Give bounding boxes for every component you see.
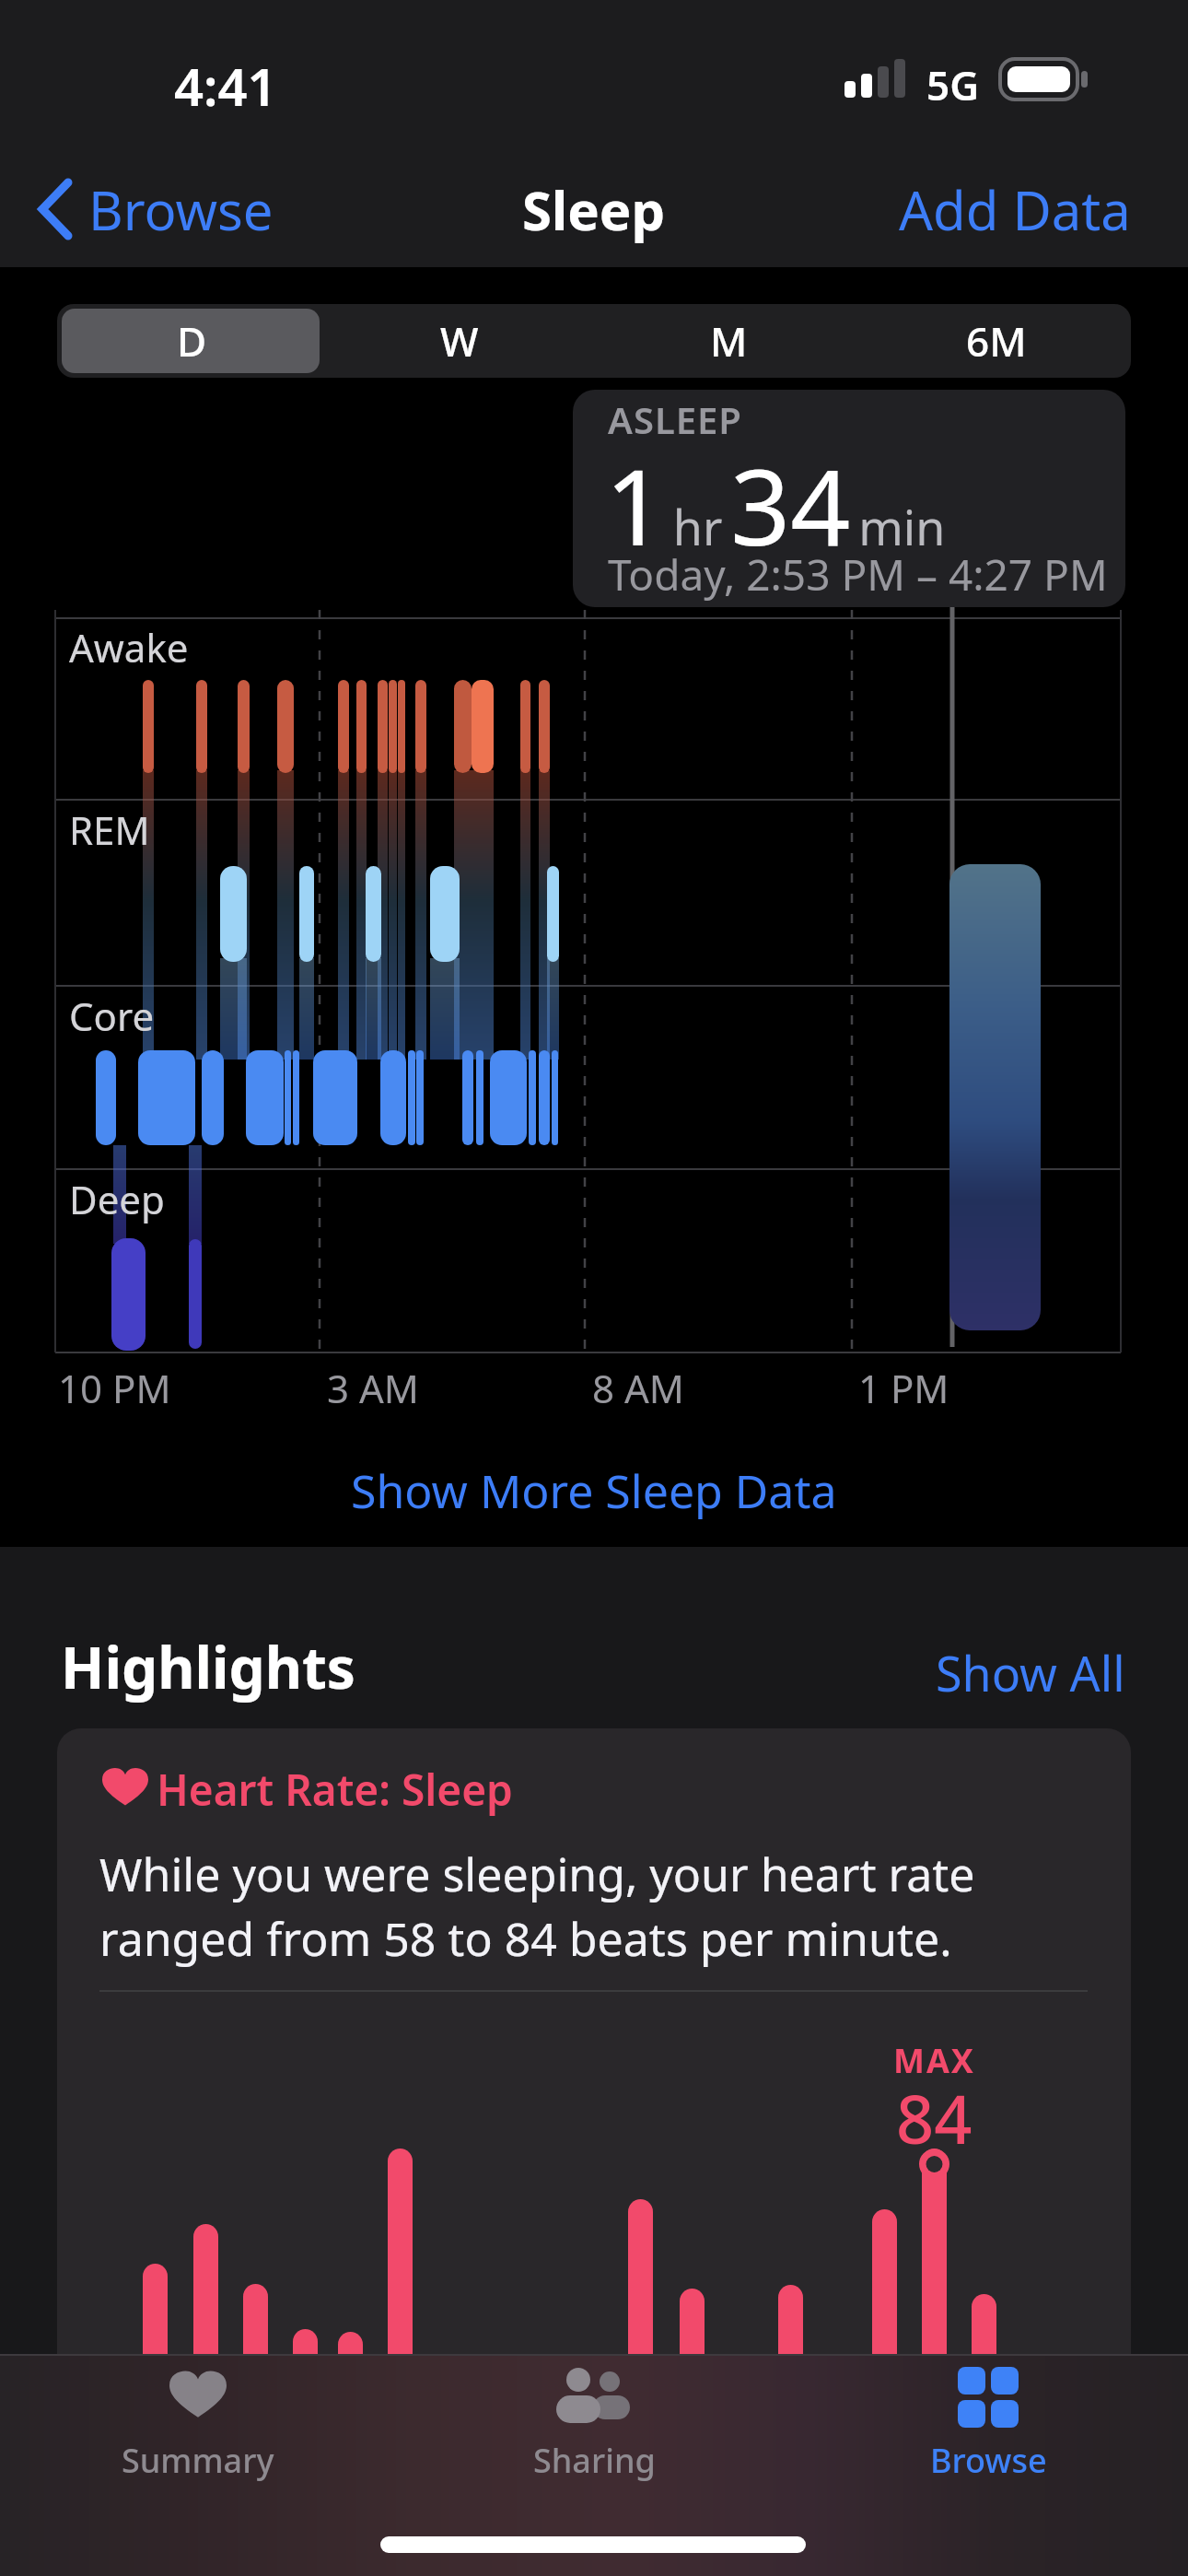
staticText: W	[440, 313, 479, 369]
staticText: Show All	[936, 1640, 1125, 1695]
staticText: Today, 2:53 PM – 4:27 PM	[608, 545, 1108, 603]
staticText: M	[710, 313, 748, 369]
staticText: Browse	[88, 173, 274, 246]
staticText: 1 PM	[858, 1362, 949, 1408]
staticText: While you were sleeping, your heart rate	[99, 1843, 975, 1905]
staticText: Core	[69, 989, 155, 1042]
staticText: 8 AM	[592, 1362, 684, 1408]
staticText: Browse	[930, 2438, 1047, 2483]
staticText: ranged from 58 to 84 beats per minute.	[99, 1907, 952, 1970]
staticText: MAX	[893, 2038, 975, 2075]
staticText: D	[177, 313, 207, 369]
staticText: Heart Rate: Sleep	[157, 1761, 513, 1819]
staticText: Summary	[122, 2438, 274, 2483]
staticText: Sleep	[522, 173, 666, 246]
staticText: Show More Sleep Data	[351, 1459, 837, 1522]
staticText: 5G	[926, 57, 980, 105]
staticText: Awake	[69, 621, 189, 673]
staticText: Highlights	[61, 1628, 355, 1705]
staticText: ASLEEP	[608, 394, 742, 435]
staticText: Sharing	[533, 2438, 656, 2483]
staticText: 3 AM	[327, 1362, 419, 1408]
staticText: 6M	[966, 313, 1027, 369]
staticText: 1 hr 34 min	[605, 433, 946, 562]
staticText: 4:41	[174, 51, 277, 115]
staticText: Add Data	[899, 173, 1131, 246]
staticText: REM	[69, 803, 150, 856]
staticText: 84	[896, 2073, 973, 2150]
staticText: 10 PM	[58, 1362, 171, 1408]
staticText: Deep	[69, 1173, 165, 1225]
